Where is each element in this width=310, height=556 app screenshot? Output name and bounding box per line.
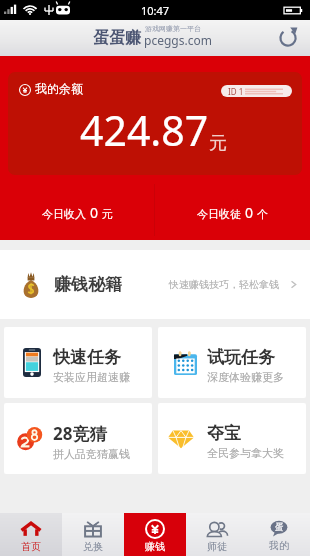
button[interactable]: 28竞猜 <box>4 403 152 474</box>
button[interactable]: ID 1 <box>221 85 292 97</box>
staticText: 深度体验赚更多 <box>207 370 284 384</box>
staticText: 兑换 <box>83 540 103 553</box>
button[interactable]: 今日收入 <box>0 180 154 240</box>
staticText: 424.87 <box>80 102 209 158</box>
button[interactable]: 赚钱 <box>124 513 186 556</box>
staticText: 拼人品竞猜赢钱 <box>53 447 130 461</box>
staticText: 0 <box>90 203 99 222</box>
staticText: 赚钱 <box>145 540 165 553</box>
staticText: 元 <box>102 207 113 221</box>
button[interactable]: 快速任务 <box>4 327 152 398</box>
button[interactable]: 首页 <box>0 513 62 556</box>
button[interactable]: 夺宝 <box>158 403 306 474</box>
staticText: 个 <box>257 207 268 221</box>
staticText: 首页 <box>21 540 41 553</box>
button[interactable]: 蛋 <box>248 513 310 556</box>
staticText: 赚钱秘籍 <box>54 274 122 295</box>
staticText: 安装应用超速赚 <box>53 370 130 384</box>
button[interactable]: 试玩任务 <box>158 327 306 398</box>
button[interactable]: 师徒 <box>186 513 248 556</box>
staticText: 元 <box>209 132 227 155</box>
staticText: ID 1 <box>228 86 244 97</box>
staticText: 夺宝 <box>207 423 241 444</box>
button[interactable]: 兑换 <box>62 513 124 556</box>
staticText: 试玩任务 <box>207 347 275 368</box>
staticText: 0 <box>245 203 254 222</box>
staticText: 蛋蛋赚 <box>93 28 141 48</box>
staticText: 28竞猜 <box>53 422 107 445</box>
staticText: 师徒 <box>207 540 227 553</box>
staticText: 游戏网赚第一平台 <box>145 24 201 33</box>
staticText: 今日收徒 <box>197 207 241 221</box>
staticText: 全民参与拿大奖 <box>207 446 284 460</box>
staticText: 我的余额 <box>35 81 83 96</box>
staticText: 蛋 <box>275 522 283 532</box>
staticText: 今日收入 <box>42 207 86 221</box>
button[interactable]: 赚钱秘籍 <box>0 250 310 319</box>
staticText: 快速赚钱技巧，轻松拿钱 <box>169 278 279 291</box>
staticText: pceggs.com <box>144 32 212 48</box>
staticText: 快速任务 <box>53 347 121 368</box>
staticText: 10:47 <box>141 3 170 18</box>
button[interactable]: 今日收徒 <box>155 180 310 240</box>
button[interactable]: Refresh <box>275 25 301 51</box>
staticText: 我的 <box>269 539 289 552</box>
